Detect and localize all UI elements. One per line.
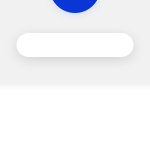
button[interactable]: Search (16, 33, 133, 57)
button[interactable]: Profile (49, 0, 100, 13)
